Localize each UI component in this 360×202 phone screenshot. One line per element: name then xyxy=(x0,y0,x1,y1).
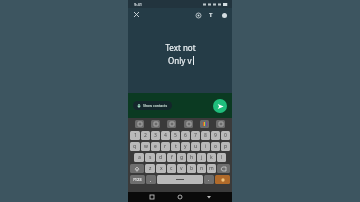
staticText: e xyxy=(154,143,157,150)
staticText: r xyxy=(164,143,167,150)
staticText: ?123 xyxy=(133,177,142,182)
button[interactable]: d xyxy=(156,153,166,162)
staticText: 7 xyxy=(194,132,197,139)
button[interactable]: 0 xyxy=(221,131,230,140)
button[interactable]: y xyxy=(181,142,190,151)
staticText: v xyxy=(180,165,183,172)
staticText: s xyxy=(149,154,152,161)
staticText: y xyxy=(184,143,187,150)
staticText: 0 xyxy=(224,132,227,139)
staticText: u xyxy=(194,143,198,150)
button[interactable]: Home xyxy=(175,192,185,202)
button[interactable]: o xyxy=(211,142,220,151)
staticText: 5 xyxy=(174,132,177,139)
button[interactable]: b xyxy=(187,164,196,173)
button[interactable]: 2 xyxy=(141,131,150,140)
staticText: 8 xyxy=(204,132,207,139)
staticText: w xyxy=(144,143,148,150)
staticText: c xyxy=(170,165,173,172)
button[interactable]: Keyboard tool 2 xyxy=(151,120,160,128)
button[interactable]: Close xyxy=(131,9,142,20)
staticText: n xyxy=(200,165,204,172)
button[interactable]: h xyxy=(187,153,196,162)
staticText: 9:41 xyxy=(134,2,142,7)
button[interactable]: , xyxy=(146,175,156,184)
staticText: b xyxy=(190,165,194,172)
staticText: k xyxy=(210,154,213,161)
staticText: Text not xyxy=(165,42,196,53)
button[interactable]: Format text xyxy=(206,10,216,20)
button[interactable]: Recents xyxy=(147,192,157,202)
button[interactable]: v xyxy=(177,164,186,173)
staticText: g xyxy=(180,154,184,161)
staticText: q xyxy=(133,143,137,150)
staticText: z xyxy=(149,165,152,172)
staticText: 6 xyxy=(184,132,187,139)
button[interactable]: Keyboard tool 4 xyxy=(184,120,193,128)
button[interactable]: 3 xyxy=(151,131,160,140)
button[interactable]: r xyxy=(161,142,170,151)
button[interactable]: f xyxy=(167,153,176,162)
button[interactable]: i xyxy=(201,142,210,151)
button[interactable]: Keyboard tool 6 xyxy=(216,120,225,128)
button[interactable]: Send xyxy=(213,99,227,113)
button[interactable]: 5 xyxy=(171,131,180,140)
button[interactable]: m xyxy=(207,164,216,173)
button[interactable]: 7 xyxy=(191,131,200,140)
staticText: p xyxy=(224,143,228,150)
button[interactable]: Color xyxy=(219,10,229,20)
button[interactable]: Enter xyxy=(215,175,230,184)
staticText: i xyxy=(205,143,207,150)
button[interactable]: Back xyxy=(204,192,214,202)
staticText: f xyxy=(171,154,173,161)
staticText: . xyxy=(208,177,210,182)
staticText: 2 xyxy=(144,132,147,139)
button[interactable]: e xyxy=(151,142,160,151)
button[interactable]: 4 xyxy=(161,131,170,140)
button[interactable]: g xyxy=(177,153,186,162)
button[interactable]: w xyxy=(141,142,150,151)
button[interactable]: Palette xyxy=(193,10,203,20)
staticText: Only v xyxy=(168,55,192,66)
staticText: 3 xyxy=(154,132,157,139)
button[interactable]: n xyxy=(197,164,206,173)
button[interactable]: u xyxy=(191,142,200,151)
staticText: Show contacts xyxy=(143,103,168,108)
button[interactable]: q xyxy=(130,142,140,151)
staticText: a xyxy=(138,154,141,161)
button[interactable]: x xyxy=(156,164,166,173)
staticText: 1 xyxy=(134,132,137,139)
button[interactable]: Keyboard tool 3 xyxy=(167,120,176,128)
button[interactable]: 6 xyxy=(181,131,190,140)
button[interactable]: t xyxy=(171,142,180,151)
button[interactable]: l xyxy=(217,153,226,162)
button[interactable]: c xyxy=(167,164,176,173)
button[interactable]: j xyxy=(197,153,206,162)
button[interactable]: z xyxy=(145,164,155,173)
staticText: d xyxy=(159,154,163,161)
staticText: o xyxy=(214,143,218,150)
button[interactable]: Keyboard tool 5 xyxy=(200,120,209,128)
staticText: l xyxy=(221,154,223,161)
button[interactable]: Keyboard tool 1 xyxy=(135,120,144,128)
button[interactable]: ?123 xyxy=(130,175,145,184)
staticText: x xyxy=(160,165,163,172)
staticText: t xyxy=(175,143,177,150)
staticText: h xyxy=(190,154,194,161)
button[interactable]: 1 xyxy=(130,131,140,140)
button[interactable]: 9 xyxy=(211,131,220,140)
button[interactable]: k xyxy=(207,153,216,162)
staticText: 9 xyxy=(214,132,217,139)
button[interactable]: Space xyxy=(157,175,203,184)
button[interactable]: a xyxy=(134,153,144,162)
staticText: T xyxy=(209,11,213,19)
button[interactable]: Show contacts xyxy=(133,101,172,110)
button[interactable]: Backspace xyxy=(217,164,230,173)
button[interactable]: Shift xyxy=(130,164,144,173)
button[interactable]: p xyxy=(221,142,230,151)
button[interactable]: s xyxy=(145,153,155,162)
button[interactable]: . xyxy=(204,175,214,184)
staticText: , xyxy=(150,177,152,182)
staticText: 4 xyxy=(164,132,167,139)
button[interactable]: 8 xyxy=(201,131,210,140)
